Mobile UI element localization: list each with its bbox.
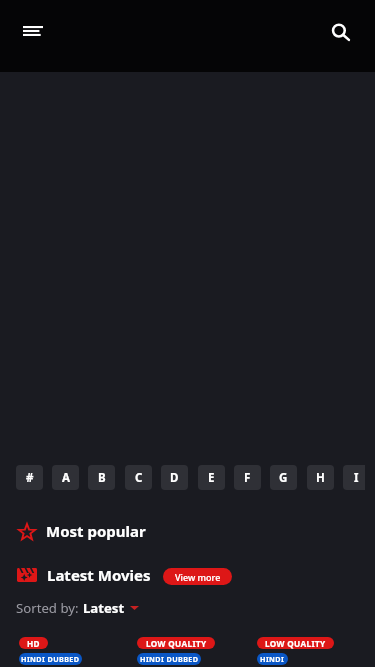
button[interactable]: A [52, 465, 79, 490]
button[interactable]: Menu [16, 13, 50, 49]
staticText: HD [27, 638, 40, 649]
staticText: # [26, 470, 34, 486]
button[interactable]: HD [19, 637, 126, 665]
staticText: HINDI DUBBED [21, 654, 80, 664]
button[interactable]: Sorted by: [16, 599, 375, 617]
button[interactable]: E [198, 465, 225, 490]
staticText: F [244, 470, 251, 486]
button[interactable]: Search [331, 23, 367, 57]
staticText: HINDI DUBBED [140, 654, 199, 664]
staticText: C [135, 470, 143, 486]
button[interactable]: C [125, 465, 152, 490]
button[interactable]: Most popular [17, 521, 375, 541]
staticText: HINDI [260, 654, 285, 664]
staticText: I [354, 470, 359, 486]
staticText: View more [175, 571, 221, 583]
button[interactable]: G [270, 465, 297, 490]
staticText: G [279, 470, 288, 486]
staticText: H [316, 470, 325, 486]
staticText: LOW QUALITY [265, 638, 326, 649]
button[interactable]: # [16, 465, 43, 490]
staticText: LOW QUALITY [146, 638, 207, 649]
staticText: Most popular [46, 521, 146, 541]
button[interactable]: B [88, 465, 115, 490]
button[interactable]: H [307, 465, 334, 490]
button[interactable]: LOW QUALITY [257, 637, 364, 665]
staticText: E [208, 470, 215, 486]
button[interactable]: D [161, 465, 188, 490]
staticText: B [98, 470, 106, 486]
staticText: Latest Movies [47, 565, 151, 585]
button[interactable]: F [234, 465, 261, 490]
staticText: D [170, 470, 179, 486]
staticText: A [62, 470, 70, 486]
button[interactable]: View more [163, 568, 232, 585]
staticText: Latest [83, 599, 125, 617]
button[interactable]: LOW QUALITY [137, 637, 244, 665]
staticText: Sorted by: [16, 599, 79, 617]
button[interactable]: I [343, 465, 365, 490]
